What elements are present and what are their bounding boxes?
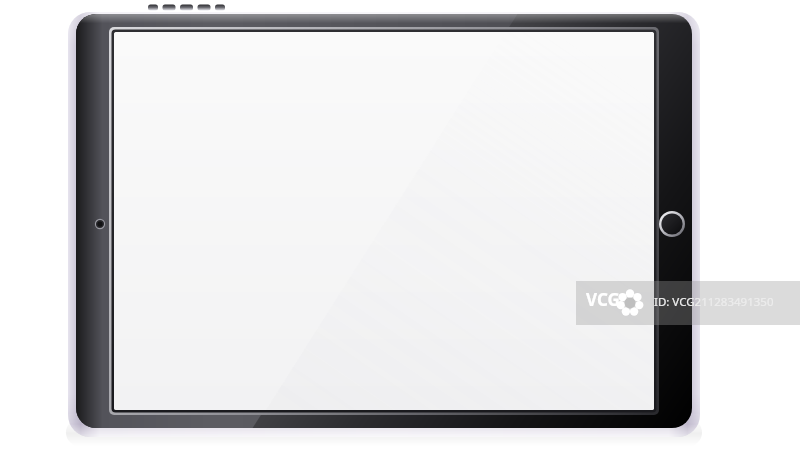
button[interactable]: Tablet device mockup xyxy=(0,0,800,450)
